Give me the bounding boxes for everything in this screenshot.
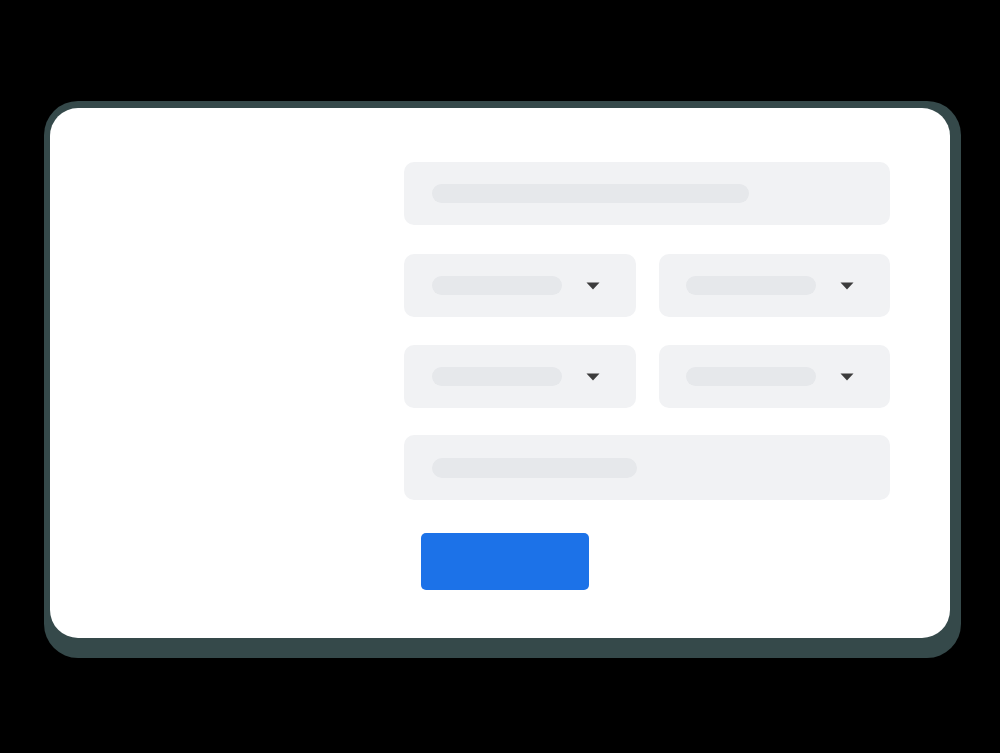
button[interactable]: Select option	[659, 345, 890, 408]
button[interactable]: Select option	[404, 345, 636, 408]
button[interactable]: Select option	[404, 254, 636, 317]
button[interactable]	[404, 162, 890, 225]
button[interactable]: Select option	[659, 254, 890, 317]
button[interactable]: Submit	[421, 533, 589, 590]
button[interactable]	[404, 435, 890, 500]
